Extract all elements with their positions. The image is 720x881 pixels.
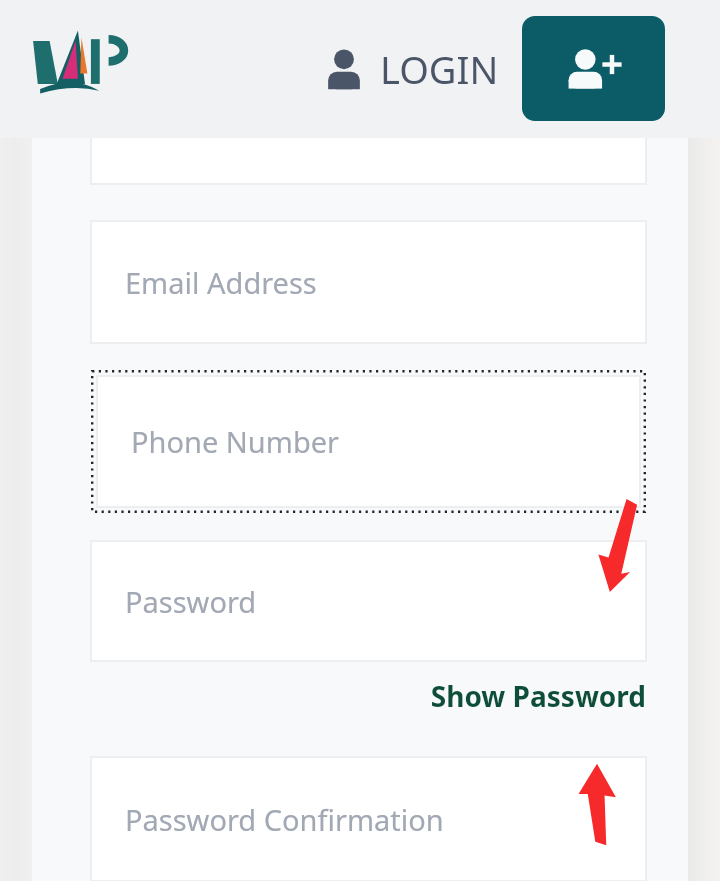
staticText: Password Confirmation: [125, 800, 444, 839]
button[interactable]: Register new account: [522, 16, 665, 121]
staticText: Password: [125, 582, 257, 621]
staticText: Email Address: [125, 263, 317, 302]
staticText: Show Password: [430, 677, 646, 715]
button[interactable]: Phone Number: [97, 376, 640, 507]
button[interactable]: [91, 100, 646, 184]
button[interactable]: LOGIN: [318, 35, 503, 103]
staticText: Phone Number: [131, 422, 340, 461]
button[interactable]: Password: [91, 541, 646, 661]
button[interactable]: Email Address: [91, 221, 646, 343]
staticText: LOGIN: [380, 43, 499, 95]
button[interactable]: Password Confirmation: [91, 757, 646, 881]
button[interactable]: Show Password: [91, 675, 646, 717]
